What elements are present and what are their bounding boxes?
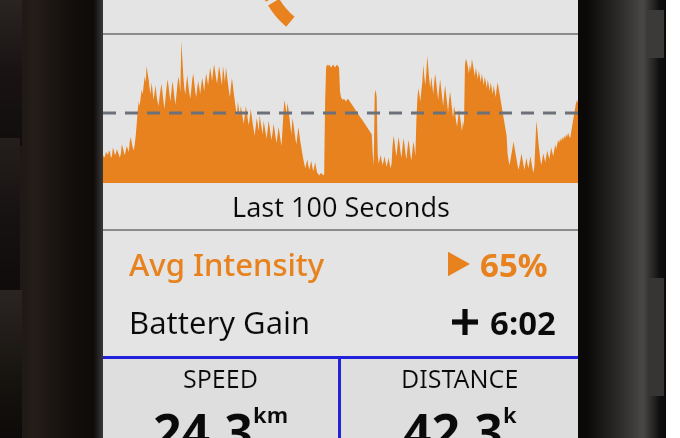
staticText: DISTANCE xyxy=(401,361,519,395)
staticText: km xyxy=(253,399,289,429)
button[interactable]: Avg Intensity xyxy=(103,235,578,293)
button[interactable]: Battery Gain xyxy=(103,293,578,351)
staticText: 24.3 xyxy=(153,397,253,438)
button[interactable]: DISTANCE xyxy=(341,357,578,438)
staticText: k xyxy=(503,399,517,429)
staticText: 42.3 xyxy=(403,397,503,438)
staticText: SPEED xyxy=(183,361,258,395)
button[interactable]: SPEED xyxy=(103,357,338,438)
staticText: Battery Gain xyxy=(129,301,311,343)
staticText: Avg Intensity xyxy=(129,243,325,285)
staticText: Last 100 Seconds xyxy=(232,188,450,225)
staticText: 6:02 xyxy=(490,300,556,345)
staticText: 65% xyxy=(480,242,548,287)
